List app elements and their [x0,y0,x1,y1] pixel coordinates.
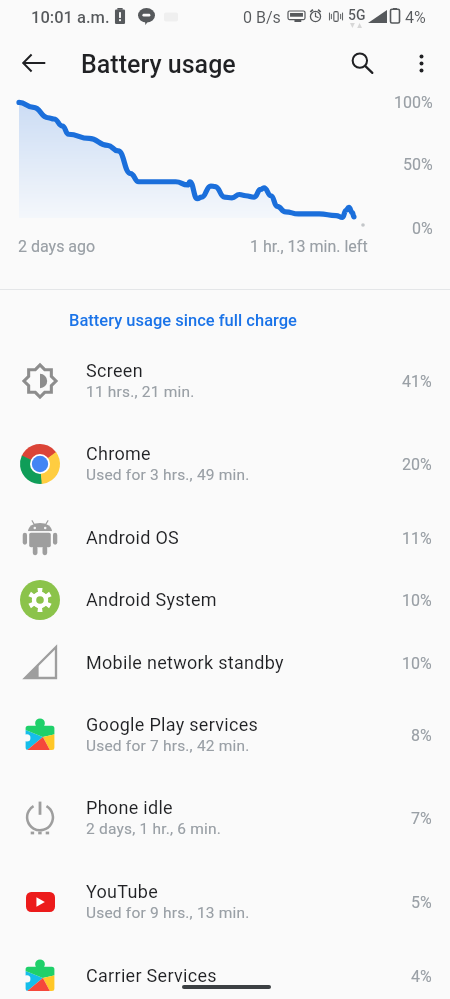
button[interactable]: Mobile network standby [0,631,450,694]
staticText: 50% [403,155,433,174]
staticText: Chrome [86,443,151,464]
staticText: 10% [402,591,432,610]
button[interactable]: Android System [0,568,450,631]
staticText: 20% [402,455,432,474]
staticText: Phone idle [86,797,173,818]
staticText: Android System [86,589,217,610]
staticText: 0% [412,219,433,238]
staticText: 0 B/s [243,8,281,27]
staticText: Used for 9 hrs., 13 min. [86,904,250,922]
button[interactable]: Google Play services [0,693,450,777]
staticText: Used for 7 hrs., 42 min. [86,737,250,755]
staticText: 2 days, 1 hr., 6 min. [86,820,222,838]
button[interactable]: Back [11,40,57,86]
staticText: 41% [402,372,432,391]
staticText: 11 hrs., 21 min. [86,383,195,401]
staticText: 1 hr., 13 min. left [250,237,368,256]
staticText: 4% [411,967,432,986]
staticText: Google Play services [86,714,259,735]
button[interactable]: Screen [0,339,450,423]
button[interactable]: Search [339,40,385,86]
staticText: 10% [402,654,432,673]
staticText: Android OS [86,527,180,548]
staticText: Battery usage [81,50,236,79]
staticText: Battery usage since full charge [69,311,297,330]
staticText: 7% [411,809,432,828]
staticText: Screen [86,360,143,381]
staticText: Used for 3 hrs., 49 min. [86,466,250,484]
button[interactable]: Battery usage since full charge [58,303,308,337]
staticText: Carrier Services [86,965,217,986]
button[interactable]: Chrome [0,422,450,506]
button[interactable]: Android OS [0,506,450,569]
button[interactable]: Carrier Services [0,944,450,999]
staticText: Mobile network standby [86,652,284,673]
staticText: YouTube [86,881,159,902]
staticText: 5G [348,7,366,23]
staticText: 11% [402,529,432,548]
staticText: 100% [394,93,433,112]
staticText: 4% [405,8,426,27]
staticText: 10:01 a.m. [31,8,110,27]
button[interactable]: More options [398,40,444,86]
button[interactable]: YouTube [0,860,450,944]
staticText: 2 days ago [18,237,96,256]
staticText: 5% [411,893,432,912]
staticText: 8% [411,726,432,745]
button[interactable]: Phone idle [0,776,450,860]
